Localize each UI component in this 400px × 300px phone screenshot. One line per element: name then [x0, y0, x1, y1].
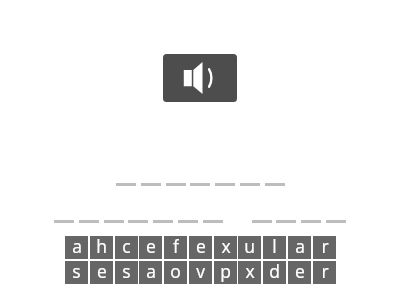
staticText: s — [122, 259, 131, 282]
staticText: r — [321, 234, 329, 257]
button[interactable]: s — [115, 261, 138, 284]
button[interactable]: a — [288, 236, 311, 259]
button[interactable]: f — [164, 236, 187, 259]
button[interactable]: r — [313, 236, 336, 259]
staticText: r — [321, 259, 329, 282]
staticText: s — [72, 259, 81, 282]
staticText: e — [146, 234, 156, 257]
staticText: a — [146, 259, 156, 282]
button[interactable]: s — [65, 261, 88, 284]
staticText: a — [295, 234, 305, 257]
staticText: v — [196, 259, 205, 282]
button[interactable]: d — [263, 261, 286, 284]
button[interactable]: u — [238, 236, 261, 259]
button[interactable]: h — [90, 236, 113, 259]
button[interactable]: p — [214, 261, 237, 284]
staticText: c — [122, 234, 131, 257]
button[interactable]: c — [115, 236, 138, 259]
staticText: x — [221, 234, 231, 257]
button[interactable]: e — [139, 236, 162, 259]
staticText: e — [97, 259, 107, 282]
staticText: e — [196, 234, 206, 257]
button[interactable]: a — [65, 236, 88, 259]
button[interactable]: Play audio — [163, 54, 237, 102]
button[interactable]: x — [238, 261, 261, 284]
button[interactable]: e — [189, 236, 212, 259]
staticText: u — [244, 234, 255, 257]
button[interactable]: r — [313, 261, 336, 284]
staticText: h — [96, 234, 107, 257]
staticText: l — [272, 234, 277, 257]
button[interactable]: l — [263, 236, 286, 259]
button[interactable]: o — [164, 261, 187, 284]
staticText: e — [295, 259, 305, 282]
staticText: o — [170, 259, 181, 282]
staticText: a — [72, 234, 82, 257]
button[interactable]: e — [288, 261, 311, 284]
button[interactable]: x — [214, 236, 237, 259]
button[interactable]: e — [90, 261, 113, 284]
staticText: f — [173, 234, 179, 257]
button[interactable]: a — [139, 261, 162, 284]
button[interactable]: v — [189, 261, 212, 284]
staticText: d — [269, 259, 280, 282]
staticText: x — [245, 259, 255, 282]
staticText: p — [220, 259, 231, 282]
